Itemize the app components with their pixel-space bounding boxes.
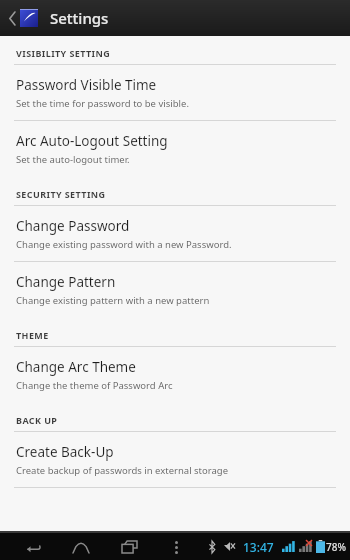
button[interactable]: Create Back-Up	[0, 432, 350, 487]
button[interactable]: Change Arc Theme	[0, 347, 350, 402]
staticText: Change Password	[16, 217, 130, 235]
staticText: Arc Auto-Logout Setting	[16, 132, 168, 150]
button[interactable]: Arc Auto-Logout Setting	[0, 121, 350, 176]
staticText: Settings	[50, 8, 109, 28]
button[interactable]: Password Visible Time	[0, 65, 350, 120]
staticText: Set the time for password to be visible.	[16, 97, 189, 110]
staticText: Set the auto-logout timer.	[16, 153, 130, 166]
staticText: BACK UP	[16, 414, 58, 426]
staticText: 13:47	[243, 539, 274, 555]
button[interactable]: Navigate up	[6, 0, 40, 36]
button[interactable]: Recent apps	[118, 536, 140, 558]
staticText: Change Arc Theme	[16, 358, 136, 376]
staticText: Change existing password with a new Pass…	[16, 238, 232, 251]
staticText: 78%	[326, 540, 346, 554]
button[interactable]: Change Pattern	[0, 262, 350, 317]
button[interactable]: Back	[22, 536, 44, 558]
staticText: Change existing pattern with a new patte…	[16, 294, 210, 307]
button[interactable]: Menu	[166, 537, 186, 557]
button[interactable]: Home	[70, 536, 92, 558]
staticText: SECURITY SETTING	[16, 188, 106, 200]
staticText: THEME	[16, 329, 49, 341]
staticText: Create backup of passwords in external s…	[16, 464, 229, 477]
staticText: Change Pattern	[16, 273, 116, 291]
button[interactable]: Change Password	[0, 206, 350, 261]
staticText: VISIBILITY SETTING	[16, 47, 111, 59]
staticText: Change the theme of Password Arc	[16, 379, 173, 392]
staticText: Password Visible Time	[16, 76, 157, 94]
staticText: Create Back-Up	[16, 443, 114, 461]
